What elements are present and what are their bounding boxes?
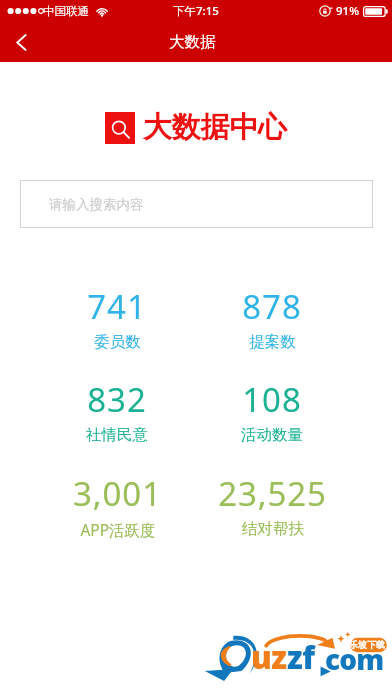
- staticText: 社情民意: [86, 425, 148, 445]
- button[interactable]: 741: [87, 284, 147, 352]
- button[interactable]: 请输入搜索内容: [20, 180, 373, 228]
- staticText: com: [325, 640, 384, 678]
- button[interactable]: 返回: [3, 24, 39, 60]
- staticText: 请输入搜索内容: [49, 196, 144, 213]
- staticText: zf: [287, 636, 315, 678]
- staticText: 108: [242, 377, 302, 422]
- button[interactable]: 23,525: [218, 471, 327, 539]
- staticText: 中国联通: [43, 4, 89, 18]
- staticText: 832: [87, 377, 147, 422]
- staticText: 878: [242, 284, 302, 329]
- staticText: 大数据中心: [143, 109, 287, 146]
- staticText: 3,001: [73, 471, 162, 516]
- staticText: 91%: [336, 3, 359, 19]
- button[interactable]: 3,001: [73, 471, 162, 540]
- staticText: 大数据: [169, 32, 216, 52]
- staticText: 乐坡下载: [349, 639, 385, 650]
- staticText: APP活跃度: [80, 519, 156, 540]
- staticText: 委员数: [94, 332, 141, 352]
- staticText: 提案数: [249, 332, 296, 352]
- staticText: 741: [87, 284, 147, 329]
- button[interactable]: 832: [86, 377, 148, 445]
- staticText: 23,525: [218, 471, 327, 516]
- staticText: 活动数量: [241, 425, 303, 445]
- button[interactable]: 108: [241, 377, 303, 445]
- staticText: uz: [251, 636, 287, 678]
- staticText: 结对帮扶: [242, 519, 304, 539]
- staticText: 下午7:15: [173, 3, 219, 19]
- button[interactable]: 878: [242, 284, 302, 352]
